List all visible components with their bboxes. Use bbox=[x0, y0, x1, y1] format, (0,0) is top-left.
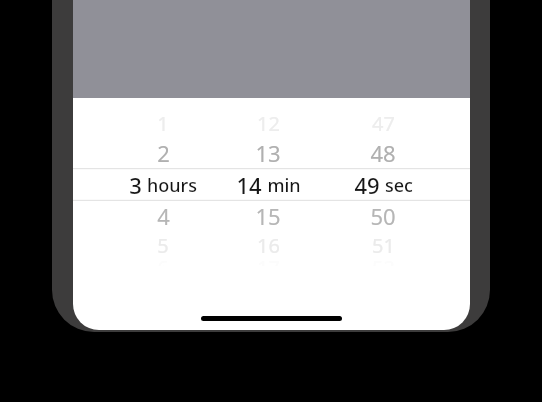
button[interactable]: 16 bbox=[213, 231, 323, 260]
staticText: min bbox=[267, 173, 301, 198]
button[interactable]: Home bbox=[201, 316, 342, 321]
staticText: 14 bbox=[236, 170, 262, 200]
staticText: 50 bbox=[370, 201, 396, 231]
button[interactable]: 15 bbox=[213, 201, 323, 231]
button[interactable]: 51 bbox=[323, 231, 443, 260]
staticText: 13 bbox=[255, 138, 281, 168]
button[interactable]: 49 bbox=[323, 168, 443, 201]
staticText: 12 bbox=[257, 110, 280, 137]
staticText: 16 bbox=[257, 232, 280, 259]
staticText: 48 bbox=[370, 138, 396, 168]
button[interactable]: 2 bbox=[113, 138, 213, 168]
staticText: 4 bbox=[157, 201, 170, 231]
staticText: 47 bbox=[372, 110, 395, 137]
staticText: 2 bbox=[157, 138, 170, 168]
staticText: 3 bbox=[129, 170, 142, 200]
staticText: 49 bbox=[354, 170, 380, 200]
staticText: 51 bbox=[372, 232, 395, 259]
staticText: 1 bbox=[157, 110, 169, 137]
staticText: 15 bbox=[255, 201, 281, 231]
button[interactable]: 48 bbox=[323, 138, 443, 168]
button[interactable]: 14 bbox=[213, 168, 323, 201]
staticText: sec bbox=[385, 173, 413, 198]
button[interactable]: 13 bbox=[213, 138, 323, 168]
staticText: 5 bbox=[157, 232, 169, 259]
button[interactable]: 50 bbox=[323, 201, 443, 231]
button[interactable]: 3 bbox=[113, 168, 213, 201]
staticText: hours bbox=[147, 173, 197, 198]
button[interactable]: 4 bbox=[113, 201, 213, 231]
